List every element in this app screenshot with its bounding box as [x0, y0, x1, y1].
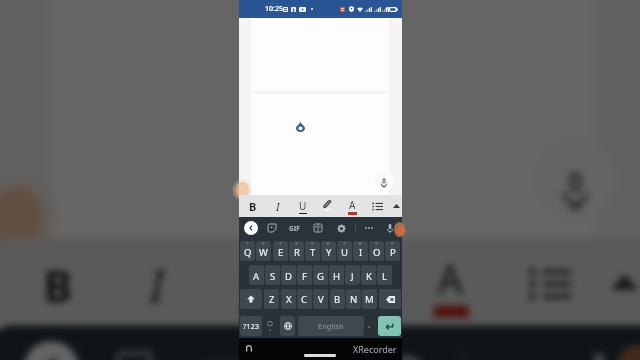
button[interactable]: 3	[273, 241, 288, 261]
staticText: I	[359, 246, 363, 259]
button[interactable]: B	[8, 239, 106, 325]
button[interactable]: 1	[240, 241, 255, 261]
button[interactable]: Languages	[280, 316, 295, 336]
staticText: 9	[375, 241, 378, 246]
button[interactable]: I	[106, 239, 205, 325]
button[interactable]: Space	[298, 316, 364, 336]
staticText: E	[278, 246, 284, 259]
button[interactable]: 2	[256, 241, 271, 261]
button[interactable]: M	[362, 289, 377, 309]
button[interactable]	[365, 195, 390, 217]
button[interactable]: U	[290, 195, 315, 217]
button[interactable]: C	[297, 289, 312, 309]
staticText: 4	[295, 241, 298, 246]
staticText: S	[270, 270, 276, 283]
button[interactable]: U	[205, 239, 303, 325]
button[interactable]: Z	[264, 289, 279, 309]
staticText: XRecorder	[353, 343, 397, 355]
staticText: GIF	[201, 353, 244, 360]
button[interactable]: B	[330, 289, 345, 309]
button[interactable]: 7	[337, 241, 352, 261]
button[interactable]: Backspace	[379, 289, 401, 309]
button[interactable]: Voice typing	[374, 170, 394, 190]
button[interactable]: Home	[243, 342, 255, 354]
staticText: 7	[343, 241, 346, 246]
staticText: I	[276, 199, 280, 214]
button[interactable]: 0	[385, 241, 400, 261]
staticText: B	[249, 199, 257, 214]
button[interactable]: Voice input	[571, 333, 627, 360]
button[interactable]: H	[329, 265, 344, 285]
button[interactable]: D	[281, 265, 296, 285]
button[interactable]: Period	[363, 316, 374, 336]
button[interactable]: Stickers	[106, 333, 162, 360]
button[interactable]: GIF	[285, 219, 303, 237]
button[interactable]	[303, 239, 402, 325]
button[interactable]: Voice input	[383, 219, 397, 237]
staticText: 6	[327, 241, 330, 246]
button[interactable]: 5	[305, 241, 320, 261]
button[interactable]: Emoji	[264, 316, 275, 336]
staticText: B	[334, 293, 341, 306]
staticText: H	[333, 270, 341, 283]
button[interactable]: L	[377, 265, 392, 285]
staticText: A	[437, 251, 465, 306]
button[interactable]	[500, 239, 599, 325]
button[interactable]: N	[346, 289, 361, 309]
button[interactable]: More options	[362, 219, 376, 237]
button[interactable]: 8	[353, 241, 368, 261]
button[interactable]: Back	[24, 341, 79, 360]
staticText: O	[373, 246, 381, 259]
button[interactable]: V	[313, 289, 328, 309]
button[interactable]: Settings	[378, 333, 434, 360]
staticText: 0	[391, 241, 394, 246]
button[interactable]: 4	[289, 241, 304, 261]
staticText: L	[382, 270, 387, 283]
button[interactable]: Collapse toolbar	[390, 195, 402, 217]
button[interactable]: 9	[369, 241, 384, 261]
button[interactable]: B	[240, 195, 265, 217]
staticText: GIF	[289, 224, 300, 233]
button[interactable]: Shift	[240, 289, 262, 309]
staticText: N	[350, 293, 358, 306]
button[interactable]: A	[402, 239, 500, 325]
button[interactable]: Enter	[378, 316, 401, 336]
button[interactable]: F	[297, 265, 312, 285]
staticText: K	[366, 270, 372, 283]
button[interactable]: A	[249, 265, 264, 285]
staticText: A	[349, 198, 356, 212]
staticText: F	[302, 270, 307, 283]
button[interactable]: A	[340, 195, 365, 217]
button[interactable]: 6	[321, 241, 336, 261]
staticText: U	[240, 254, 272, 310]
button[interactable]: S	[265, 265, 280, 285]
button[interactable]: Back	[244, 221, 258, 235]
staticText: A	[253, 270, 260, 283]
button[interactable]: G	[313, 265, 328, 285]
button[interactable]: Voice typing	[536, 140, 615, 219]
button[interactable]: Clipboard	[311, 219, 325, 237]
staticText: 1	[246, 241, 249, 246]
staticText: P	[390, 246, 396, 259]
staticText: D	[285, 270, 292, 283]
button[interactable]: Collapse toolbar	[599, 239, 640, 325]
staticText: G	[317, 270, 324, 283]
staticText: U	[299, 199, 307, 213]
button[interactable]: Symbols	[240, 316, 262, 336]
button[interactable]: X	[281, 289, 296, 309]
button[interactable]: Clipboard	[288, 333, 343, 360]
staticText: Q	[244, 246, 252, 259]
button[interactable]: Stickers	[265, 219, 279, 237]
button[interactable]: J	[345, 265, 360, 285]
button[interactable]: I	[265, 195, 290, 217]
staticText: X	[286, 293, 292, 306]
staticText: 10:25	[265, 4, 283, 14]
staticText: Z	[269, 293, 275, 306]
staticText: ?123	[243, 321, 260, 331]
button[interactable]: K	[361, 265, 376, 285]
button[interactable]	[315, 195, 340, 217]
button[interactable]: Settings	[334, 219, 348, 237]
staticText: 8	[359, 241, 362, 246]
button[interactable]: GIF	[185, 333, 256, 360]
